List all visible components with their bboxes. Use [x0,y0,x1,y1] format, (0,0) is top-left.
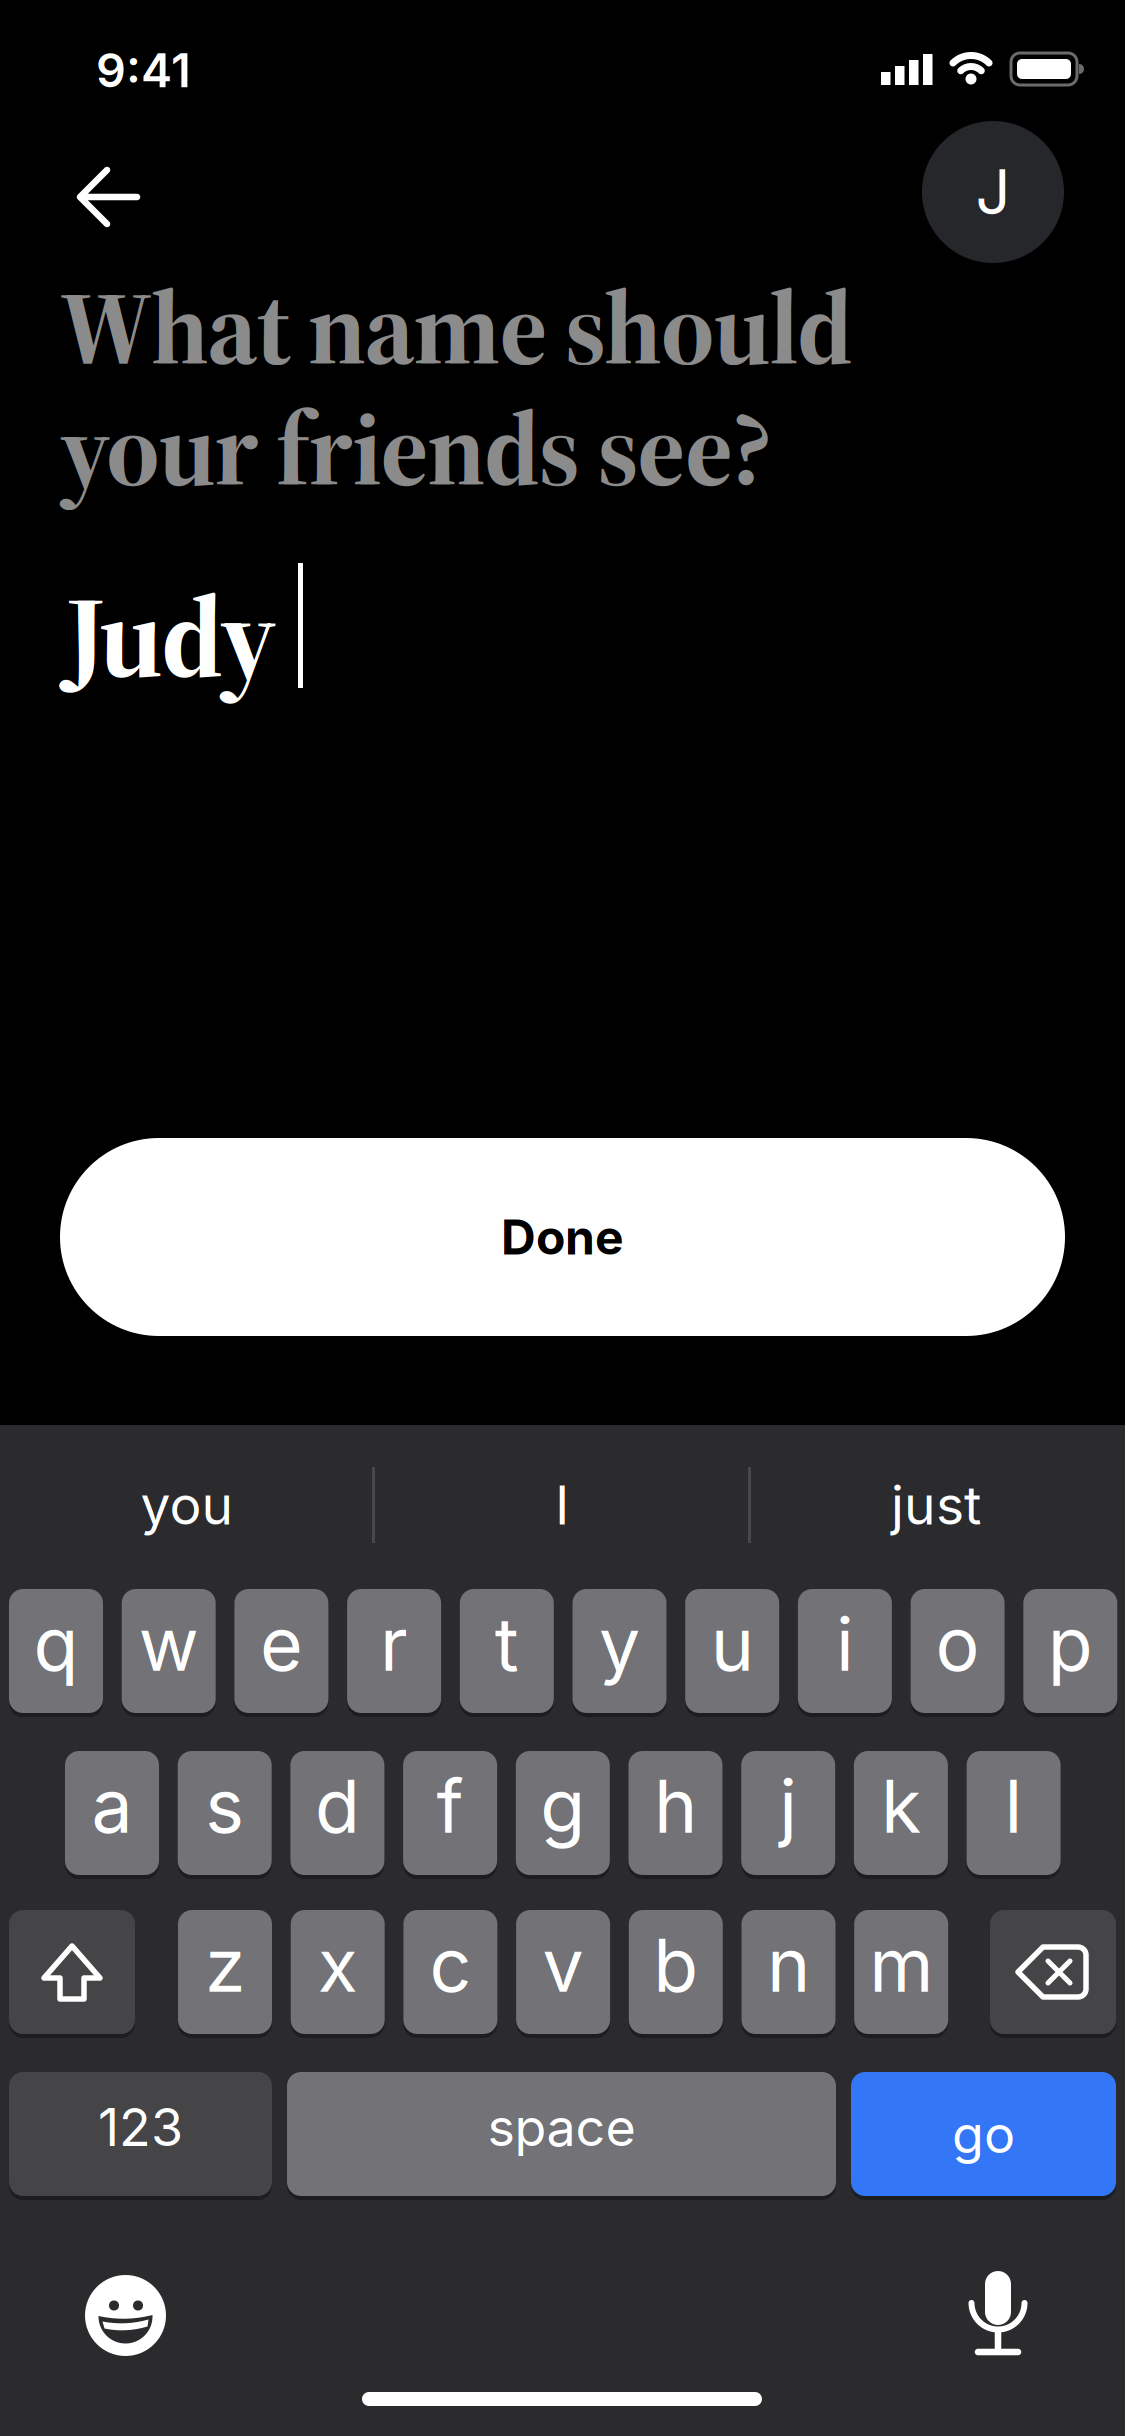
button[interactable]: o [911,1589,1005,1713]
button[interactable]: Done [60,1138,1065,1336]
button[interactable]: j [741,1751,835,1875]
button[interactable]: you [2,1445,372,1565]
button[interactable]: Shift [9,1910,135,2034]
staticText: Done [501,1208,624,1266]
staticText: What name should [60,257,853,398]
button[interactable]: a [65,1751,159,1875]
staticText: your friends see? [60,378,771,519]
button[interactable]: Dictate [958,2271,1038,2355]
staticText: j [779,1762,797,1850]
button[interactable]: d [290,1751,384,1875]
staticText: q [33,1600,78,1688]
staticText: b [653,1921,698,2009]
staticText: 123 [98,2095,183,2158]
button[interactable]: l [967,1751,1061,1875]
button[interactable]: Back [70,165,146,229]
staticText: v [543,1921,584,2009]
staticText: space [487,2095,635,2158]
button[interactable]: 123 [9,2072,272,2196]
button[interactable]: k [854,1751,948,1875]
staticText: g [540,1762,585,1850]
button[interactable]: v [516,1910,610,2034]
staticText: J [975,155,1010,229]
button[interactable]: b [629,1910,723,2034]
button[interactable]: Profile [922,121,1064,263]
staticText: Judy [66,557,276,714]
button[interactable]: h [628,1751,722,1875]
staticText: r [380,1600,408,1688]
button[interactable]: e [234,1589,328,1713]
button[interactable]: r [347,1589,441,1713]
staticText: o [936,1600,980,1688]
button[interactable]: just [751,1445,1121,1565]
staticText: just [891,1473,981,1537]
button[interactable]: m [854,1910,948,2034]
staticText: c [429,1921,471,2009]
button[interactable]: c [403,1910,497,2034]
button[interactable]: g [516,1751,610,1875]
button[interactable]: Emoji [85,2275,166,2356]
button[interactable]: I [377,1445,747,1565]
staticText: e [260,1600,303,1688]
button[interactable]: n [741,1910,835,2034]
button[interactable]: u [685,1589,779,1713]
button[interactable]: w [122,1589,216,1713]
button[interactable]: p [1023,1589,1117,1713]
button[interactable]: f [403,1751,497,1875]
staticText: w [139,1600,199,1688]
staticText: s [205,1762,244,1850]
staticText: k [881,1762,921,1850]
staticText: I [555,1473,569,1537]
staticText: m [869,1921,933,2009]
staticText: l [1005,1762,1023,1850]
button[interactable]: t [460,1589,554,1713]
staticText: u [711,1600,754,1688]
staticText: you [140,1473,233,1537]
button[interactable]: go [851,2072,1116,2196]
button[interactable]: y [572,1589,666,1713]
button[interactable]: i [798,1589,892,1713]
button[interactable]: z [178,1910,272,2034]
button[interactable]: space [287,2072,836,2196]
staticText: i [836,1600,854,1688]
staticText: p [1048,1600,1093,1688]
staticText: 9:41 [96,42,191,98]
staticText: f [437,1762,464,1850]
staticText: x [318,1921,358,2009]
staticText: t [495,1600,519,1688]
staticText: d [315,1762,360,1850]
staticText: h [654,1762,697,1850]
staticText: a [91,1762,132,1850]
staticText: go [952,2102,1015,2165]
button[interactable]: x [291,1910,385,2034]
button[interactable]: s [178,1751,272,1875]
staticText: y [599,1600,640,1688]
staticText: z [205,1921,245,2009]
button[interactable]: q [9,1589,103,1713]
staticText: n [767,1921,810,2009]
button[interactable]: Delete [990,1910,1116,2034]
